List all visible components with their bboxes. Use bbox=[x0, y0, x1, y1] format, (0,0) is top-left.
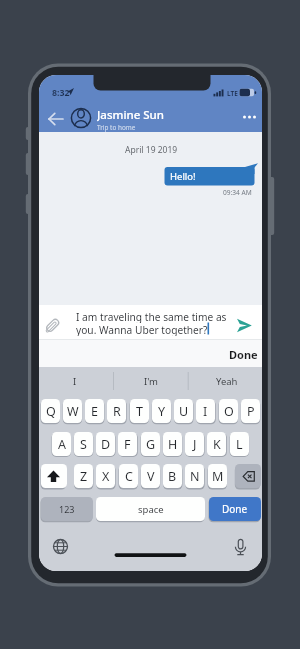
staticText: LTE bbox=[227, 89, 238, 98]
staticText: A bbox=[58, 436, 66, 453]
staticText: Done bbox=[222, 502, 248, 516]
button[interactable]: H bbox=[163, 432, 182, 456]
staticText: you. Wanna Uber together? bbox=[76, 323, 208, 336]
button[interactable]: D bbox=[96, 432, 115, 456]
staticText: W bbox=[67, 403, 79, 420]
button[interactable] bbox=[45, 108, 67, 130]
staticText: H bbox=[168, 436, 178, 453]
staticText: April 19 2019 bbox=[125, 144, 178, 156]
button[interactable] bbox=[39, 367, 113, 395]
button[interactable] bbox=[70, 107, 92, 129]
button[interactable]: J bbox=[185, 432, 204, 456]
staticText: M bbox=[212, 468, 224, 485]
button[interactable]: U bbox=[174, 399, 193, 423]
staticText: N bbox=[190, 468, 200, 485]
button[interactable] bbox=[230, 536, 251, 557]
button[interactable]: W bbox=[63, 399, 82, 423]
staticText: E bbox=[91, 403, 98, 420]
button[interactable]: G bbox=[141, 432, 160, 456]
staticText: 09:34 AM bbox=[223, 188, 252, 197]
staticText: Trip to home bbox=[97, 123, 136, 132]
button[interactable]: B bbox=[163, 464, 182, 488]
staticText: K bbox=[213, 436, 221, 453]
button[interactable] bbox=[41, 464, 67, 488]
button[interactable]: space bbox=[96, 497, 205, 521]
staticText: B bbox=[168, 468, 177, 485]
staticText: T bbox=[136, 403, 143, 420]
button[interactable]: C bbox=[119, 464, 138, 488]
staticText: I bbox=[203, 403, 208, 420]
button[interactable]: M bbox=[208, 464, 227, 488]
button[interactable]: Done bbox=[209, 497, 261, 521]
staticText: J bbox=[193, 436, 197, 453]
staticText: Yeah bbox=[216, 375, 238, 388]
button[interactable]: Z bbox=[74, 464, 93, 488]
button[interactable] bbox=[114, 367, 187, 395]
button[interactable] bbox=[43, 315, 63, 336]
button[interactable] bbox=[50, 536, 71, 557]
staticText: Done bbox=[229, 347, 258, 362]
staticText: Q bbox=[46, 403, 56, 420]
button[interactable]: V bbox=[141, 464, 160, 488]
staticText: space bbox=[138, 503, 164, 516]
staticText: F bbox=[124, 436, 131, 453]
staticText: L bbox=[236, 436, 243, 453]
button[interactable]: Y bbox=[152, 399, 171, 423]
staticText: S bbox=[80, 436, 87, 453]
staticText: I am traveling the same time as bbox=[76, 310, 227, 323]
staticText: D bbox=[101, 436, 111, 453]
button[interactable]: K bbox=[207, 432, 226, 456]
staticText: X bbox=[102, 468, 110, 485]
staticText: V bbox=[147, 468, 155, 485]
staticText: Jasmine Sun bbox=[97, 107, 165, 122]
button[interactable]: L bbox=[230, 432, 249, 456]
staticText: I bbox=[73, 375, 77, 388]
button[interactable]: S bbox=[74, 432, 93, 456]
button[interactable] bbox=[237, 107, 259, 129]
staticText: C bbox=[125, 468, 133, 485]
button[interactable]: R bbox=[107, 399, 126, 423]
button[interactable]: I bbox=[196, 399, 215, 423]
button[interactable]: E bbox=[85, 399, 104, 423]
staticText: I'm bbox=[144, 375, 158, 388]
staticText: Hello! bbox=[170, 170, 196, 183]
staticText: U bbox=[179, 403, 189, 420]
staticText: G bbox=[146, 436, 156, 453]
button[interactable]: 123 bbox=[41, 497, 93, 521]
button[interactable]: F bbox=[118, 432, 137, 456]
button[interactable]: X bbox=[96, 464, 115, 488]
staticText: Z bbox=[80, 468, 88, 485]
button[interactable]: P bbox=[241, 399, 260, 423]
button[interactable] bbox=[232, 314, 256, 337]
button[interactable]: N bbox=[185, 464, 204, 488]
button[interactable]: A bbox=[52, 432, 71, 456]
staticText: 8:32 bbox=[52, 87, 70, 99]
staticText: R bbox=[113, 403, 121, 420]
button[interactable]: T bbox=[130, 399, 149, 423]
button[interactable]: Q bbox=[41, 399, 60, 423]
staticText: P bbox=[247, 403, 255, 420]
button[interactable] bbox=[235, 464, 261, 488]
staticText: O bbox=[224, 403, 234, 420]
staticText: Y bbox=[158, 403, 166, 420]
button[interactable] bbox=[215, 341, 261, 365]
staticText: 123 bbox=[59, 503, 75, 515]
button[interactable] bbox=[188, 367, 262, 395]
button[interactable]: O bbox=[219, 399, 238, 423]
